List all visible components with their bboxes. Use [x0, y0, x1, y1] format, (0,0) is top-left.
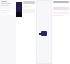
button[interactable]	[0, 0, 16, 64]
button[interactable]	[23, 1, 35, 4]
button[interactable]	[53, 1, 69, 3]
button[interactable]: Dark screen preview	[16, 0, 22, 64]
button[interactable]	[52, 0, 70, 64]
button[interactable]	[1, 9, 15, 15]
button[interactable]: Feature icon	[36, 0, 52, 64]
button[interactable]	[22, 0, 36, 64]
